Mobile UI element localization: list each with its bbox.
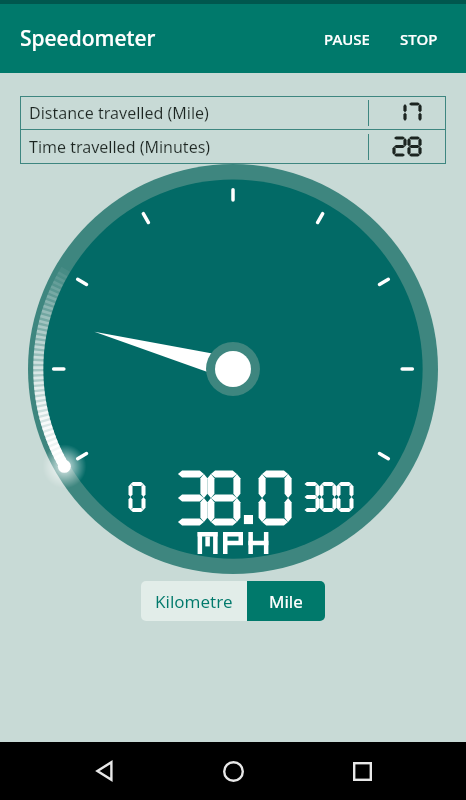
button[interactable]: PAUSE bbox=[316, 23, 378, 55]
button[interactable]: Home bbox=[209, 747, 257, 795]
button[interactable]: Time travelled (Minutes) bbox=[21, 130, 445, 163]
button[interactable]: Kilometre bbox=[141, 581, 247, 621]
staticText: Mile bbox=[269, 590, 303, 613]
staticText: Distance travelled (Mile) bbox=[29, 102, 209, 124]
staticText: PAUSE bbox=[324, 29, 370, 49]
button[interactable]: STOP bbox=[392, 23, 446, 55]
staticText: STOP bbox=[400, 29, 438, 49]
button[interactable]: Recents bbox=[338, 747, 386, 795]
button[interactable]: Mile bbox=[247, 581, 325, 621]
staticText: Speedometer bbox=[20, 24, 156, 53]
button[interactable]: Back bbox=[81, 747, 129, 795]
button[interactable]: Distance travelled (Mile) bbox=[21, 97, 445, 129]
staticText: Time travelled (Minutes) bbox=[29, 136, 211, 158]
staticText: Kilometre bbox=[155, 590, 233, 613]
